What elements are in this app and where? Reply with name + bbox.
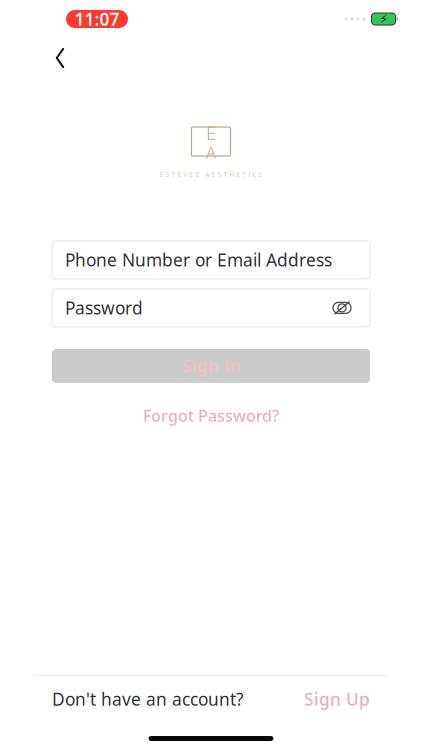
staticText: A bbox=[206, 142, 216, 163]
staticText: ⚡︎ bbox=[379, 12, 387, 26]
button[interactable]: Forgot Password? bbox=[143, 405, 279, 426]
staticText: Forgot Password? bbox=[143, 405, 279, 426]
staticText: E S T E V E Z A E S T H E T I C S bbox=[159, 170, 262, 179]
button[interactable]: Show password bbox=[327, 293, 357, 323]
staticText: Password bbox=[65, 296, 143, 319]
button[interactable]: Back bbox=[38, 38, 82, 78]
staticText: Phone Number or Email Address bbox=[65, 248, 332, 271]
staticText: Sign Up bbox=[304, 687, 370, 710]
staticText: Don't have an account? bbox=[52, 687, 244, 710]
staticText: 11:07 bbox=[74, 7, 119, 30]
staticText: Sign In bbox=[181, 354, 240, 377]
staticText: E bbox=[206, 120, 216, 145]
button[interactable]: Sign Up bbox=[304, 687, 370, 710]
button[interactable]: Sign In bbox=[52, 349, 370, 383]
